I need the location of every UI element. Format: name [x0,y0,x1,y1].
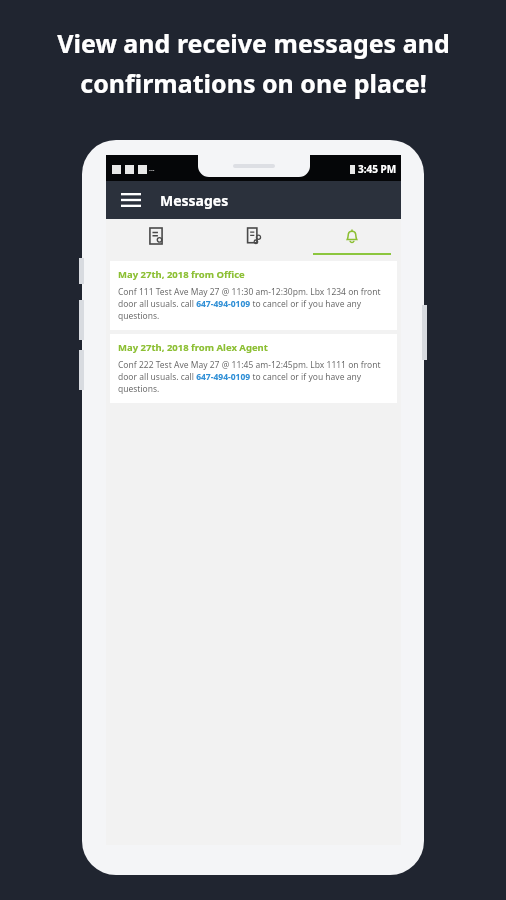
staticText: confirmations on one place! [80,66,427,100]
button[interactable]: May 27th, 2018 from Office [110,261,397,330]
staticText: ... [149,164,155,174]
button[interactable]: Open navigation menu [114,183,148,217]
staticText: May 27th, 2018 from Alex Agent [118,341,268,354]
staticText: Conf 111 Test Ave May 27 @ 11:30 am-12:3… [118,286,389,322]
button[interactable]: May 27th, 2018 from Alex Agent [110,334,397,403]
staticText: 3:45 PM [358,162,397,176]
staticText: View and receive messages and [57,26,450,60]
staticText: Messages [160,191,229,210]
staticText: Conf 222 Test Ave May 27 @ 11:45 am-12:4… [118,359,389,395]
button[interactable]: Notifications tab [303,219,401,253]
button[interactable]: Documents tab [106,219,205,253]
button[interactable]: Reports tab [205,219,303,253]
staticText: May 27th, 2018 from Office [118,268,245,281]
